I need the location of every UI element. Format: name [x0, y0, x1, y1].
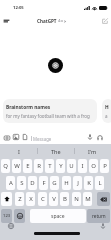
- staticText: Y: [59, 162, 63, 170]
- button[interactable]: P: [100, 159, 109, 173]
- button[interactable]: return: [87, 209, 110, 223]
- button[interactable]: Dictation: [98, 221, 107, 230]
- button[interactable]: G: [50, 176, 59, 190]
- staticText: G: [52, 179, 57, 187]
- button[interactable]: Files: [21, 133, 28, 140]
- button[interactable]: U: [67, 159, 76, 173]
- staticText: return: [92, 213, 106, 219]
- staticText: L: [98, 179, 102, 187]
- staticText: 123: [3, 213, 11, 219]
- staticText: E: [26, 162, 30, 170]
- staticText: F: [42, 179, 46, 187]
- button[interactable]: C: [38, 192, 47, 206]
- staticText: B: [63, 195, 67, 203]
- button[interactable]: Voice mode: [96, 134, 103, 141]
- button[interactable]: Voice input: [86, 133, 93, 140]
- button[interactable]: F: [39, 176, 48, 190]
- staticText: The: [51, 148, 61, 155]
- button[interactable]: S: [17, 176, 26, 190]
- button[interactable]: I: [78, 159, 87, 173]
- button[interactable]: Help me pick: [102, 99, 111, 123]
- button[interactable]: Photos: [12, 133, 19, 140]
- button[interactable]: I: [0, 144, 37, 158]
- button[interactable]: I'm: [74, 144, 111, 158]
- staticText: A: [9, 179, 13, 187]
- button[interactable]: E: [23, 159, 32, 173]
- button[interactable]: space: [30, 209, 86, 223]
- button[interactable]: Camera: [3, 134, 10, 141]
- staticText: S: [20, 179, 24, 187]
- button[interactable]: W: [12, 159, 21, 173]
- button[interactable]: T: [45, 159, 54, 173]
- button[interactable]: D: [28, 176, 37, 190]
- staticText: space: [51, 213, 65, 220]
- staticText: 12:05: [13, 5, 24, 11]
- button[interactable]: Y: [56, 159, 65, 173]
- button[interactable]: Menu: [1, 15, 12, 26]
- button[interactable]: The: [37, 144, 74, 158]
- staticText: C: [41, 195, 45, 203]
- staticText: Message: [33, 136, 52, 142]
- button[interactable]: ChatGPT: [37, 18, 66, 24]
- staticText: W: [14, 162, 20, 170]
- button[interactable]: 123: [1, 209, 12, 223]
- button[interactable]: Z: [15, 192, 24, 206]
- staticText: Z: [18, 195, 22, 203]
- staticText: O: [91, 162, 96, 170]
- button[interactable]: Switch keyboard: [6, 221, 15, 230]
- button[interactable]: L: [95, 176, 104, 190]
- button[interactable]: Backspace: [97, 192, 110, 206]
- staticText: T: [48, 162, 52, 170]
- staticText: X: [29, 195, 33, 203]
- button[interactable]: Brainstorm names: [3, 99, 97, 123]
- staticText: H: [64, 179, 69, 187]
- button[interactable]: Emoji: [14, 209, 25, 223]
- staticText: V: [52, 195, 56, 203]
- staticText: J: [77, 179, 79, 187]
- staticText: I: [18, 148, 20, 155]
- staticText: Q: [3, 162, 8, 170]
- button[interactable]: A: [6, 176, 15, 190]
- staticText: U: [69, 162, 74, 170]
- staticText: I'm: [88, 148, 97, 155]
- staticText: 4o: [58, 18, 63, 24]
- button[interactable]: B: [60, 192, 69, 206]
- button[interactable]: R: [34, 159, 43, 173]
- staticText: P: [103, 162, 107, 170]
- staticText: I: [81, 162, 84, 170]
- staticText: R: [37, 162, 41, 170]
- button[interactable]: M: [83, 192, 92, 206]
- staticText: N: [74, 195, 79, 203]
- staticText: for my fantasy football team with a frog…: [6, 113, 94, 119]
- staticText: D: [30, 179, 35, 187]
- staticText: K: [87, 179, 91, 187]
- staticText: M: [85, 195, 91, 203]
- staticText: Brainstorm names: [6, 104, 51, 111]
- staticText: Help me pick: [105, 104, 111, 111]
- button[interactable]: J: [73, 176, 82, 190]
- staticText: a gift for my dad: [105, 113, 111, 119]
- button[interactable]: New chat: [99, 15, 110, 26]
- staticText: ChatGPT: [37, 18, 57, 24]
- button[interactable]: Shift: [1, 192, 12, 206]
- button[interactable]: H: [62, 176, 71, 190]
- button[interactable]: O: [89, 159, 98, 173]
- button[interactable]: V: [49, 192, 58, 206]
- button[interactable]: Q: [1, 159, 10, 173]
- button[interactable]: N: [72, 192, 81, 206]
- button[interactable]: K: [84, 176, 93, 190]
- button[interactable]: X: [26, 192, 35, 206]
